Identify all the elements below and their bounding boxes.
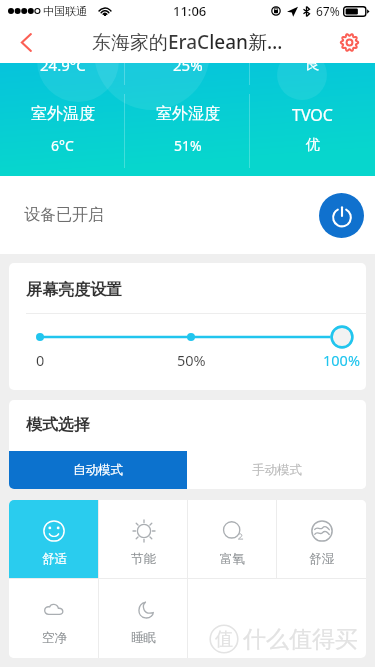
button[interactable]: 自动模式	[9, 451, 187, 489]
button[interactable]: 节能	[99, 500, 188, 578]
button[interactable]: Power	[319, 193, 364, 238]
button[interactable]: 舒湿	[277, 500, 366, 578]
button[interactable]: Settings	[327, 22, 375, 63]
staticText: 11:06	[173, 2, 207, 20]
staticText: 50%	[177, 350, 206, 370]
button[interactable]: 睡眠	[99, 579, 188, 658]
staticText: 优	[306, 136, 320, 154]
button[interactable]: 舒适	[9, 500, 99, 578]
staticText: 100%	[323, 350, 360, 370]
staticText: 手动模式	[252, 462, 302, 478]
staticText: 室外温度	[31, 104, 95, 124]
staticText: 睡眠	[131, 630, 156, 646]
button[interactable]: 富氧	[188, 500, 277, 578]
staticText: 25%	[173, 55, 203, 75]
button[interactable]: 空净	[9, 579, 99, 658]
staticText: 6°C	[51, 136, 74, 155]
staticText: TVOC	[292, 104, 333, 126]
staticText: 24.9°C	[40, 55, 86, 75]
button[interactable]: 手动模式	[187, 451, 366, 489]
staticText: 屏幕亮度设置	[26, 280, 122, 300]
staticText: 值	[215, 628, 233, 651]
button[interactable]: Back	[0, 22, 48, 63]
staticText: 中国联通	[43, 4, 87, 18]
staticText: 舒适	[42, 551, 67, 567]
staticText: 室外湿度	[156, 104, 220, 124]
staticText: 空净	[42, 630, 67, 646]
staticText: 什么值得买	[243, 625, 358, 654]
staticText: 0	[36, 350, 45, 370]
staticText: 设备已开启	[24, 205, 104, 225]
staticText: 节能	[131, 551, 156, 567]
staticText: 富氧	[220, 551, 245, 567]
staticText: 67%	[316, 3, 340, 19]
staticText: 舒湿	[309, 551, 334, 567]
staticText: 51%	[174, 136, 202, 155]
staticText: 良	[305, 55, 320, 74]
staticText: 模式选择	[26, 415, 90, 435]
staticText: 自动模式	[73, 462, 123, 478]
staticText: 东海家的EraClean新…	[92, 29, 283, 55]
